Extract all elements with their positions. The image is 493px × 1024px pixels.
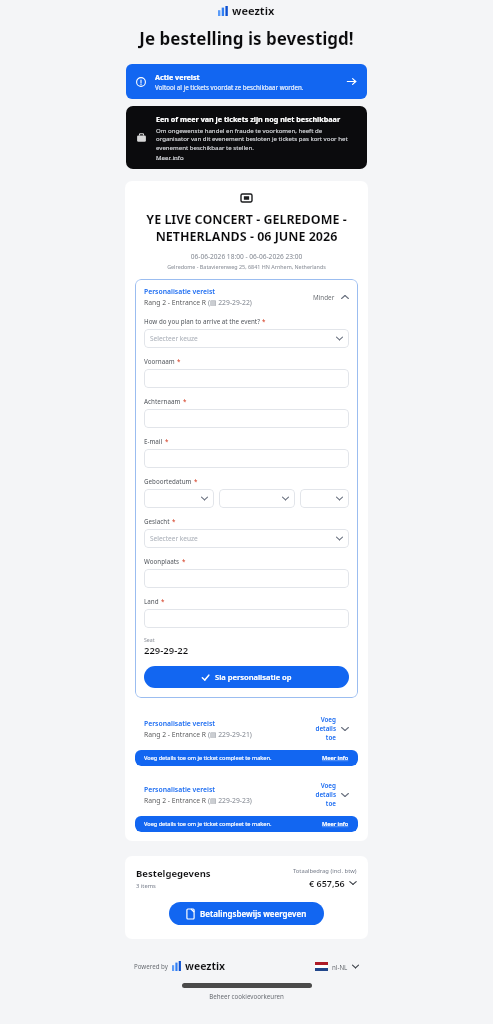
staticText: * [183,397,187,405]
staticText: 06-06-2026 18:00 - 06-06-2026 23:00 [135,252,358,261]
button[interactable]: Personalisatie vereist [135,707,358,750]
staticText: Gelredome - Batavierenweg 25, 6841 HN Ar… [135,263,358,270]
button[interactable]: Betalingsbewijs weergeven [169,902,324,925]
staticText: Meer info [322,820,349,828]
staticText: € 657,56 [309,877,345,889]
staticText: * [182,557,186,565]
staticText: toe [325,799,336,808]
staticText: * [172,517,176,525]
other: Ga verder [346,76,357,87]
button[interactable] [219,489,295,508]
staticText: Personalisatie vereist [144,785,216,794]
staticText: Land [144,597,159,605]
staticText: Rang 2 - Entrance R [144,730,208,739]
button[interactable]: Meer info [156,153,184,161]
button[interactable]: Voeg details toe om je ticket compleet t… [135,816,358,832]
staticText: Sla personalisatie op [215,672,292,682]
staticText: Betalingsbewijs weergeven [200,908,307,919]
staticText: Actie vereist [155,72,200,82]
staticText: toe [325,733,336,742]
staticText: Een of meer van je tickets zijn nog niet… [156,114,341,124]
staticText: Powered by [134,962,168,970]
button[interactable] [144,489,214,508]
staticText: Personalisatie vereist [144,719,216,728]
button[interactable] [144,449,349,468]
button[interactable]: Actie vereist [126,64,367,99]
staticText: 229-29-22 [144,644,189,657]
staticText: Personalisatie vereist [144,287,216,296]
staticText: Voeg details [302,781,336,799]
staticText: E-mail [144,437,163,445]
staticText: Selecteer keuze [150,334,198,343]
staticText: * [165,437,169,445]
staticText: Meer info [322,754,349,762]
staticText: (▤ 229-29-23) [208,796,252,805]
staticText: weeztix [185,959,226,973]
staticText: Minder [313,293,335,302]
staticText: Achternaam [144,397,181,405]
button[interactable]: Selecteer keuze [144,329,349,348]
staticText: Rang 2 - Entrance R [144,796,208,805]
staticText: Woonplaats [144,557,180,565]
staticText: (▤ 229-29-21) [208,730,252,739]
staticText: * [177,357,181,365]
button[interactable] [144,569,349,588]
staticText: YE LIVE CONCERT - GELREDOME - NETHERLAND… [135,211,358,245]
button[interactable] [144,409,349,428]
button[interactable] [300,489,349,508]
staticText: * [262,317,266,325]
staticText: Geslacht [144,517,170,525]
staticText: Seat [144,636,155,643]
button[interactable]: Selecteer keuze [144,529,349,548]
button[interactable]: € 657,56 [309,877,357,889]
button[interactable]: Personalisatie vereist [135,773,358,816]
staticText: * [161,597,165,605]
staticText: Voeg details toe om je ticket compleet t… [144,820,322,828]
button[interactable]: Personalisatie vereist [135,279,358,315]
button[interactable]: nl-NL [315,962,359,971]
staticText: Voornaam [144,357,175,365]
staticText: * [194,477,198,485]
button[interactable] [144,609,349,628]
staticText: Totaalbedrag (incl. btw) [293,867,357,875]
staticText: Om ongewenste handel en fraude te voorko… [156,126,357,152]
staticText: Voeg details [302,715,336,733]
staticText: Voeg details toe om je ticket compleet t… [144,754,322,762]
staticText: (▤ 229-29-22) [208,298,252,307]
button[interactable]: Voeg details toe om je ticket compleet t… [135,750,358,766]
staticText: Je bestelling is bevestigd! [0,27,493,50]
staticText: How do you plan to arrive at the event? [144,317,260,325]
button[interactable]: Beheer cookievoorkeuren [0,992,493,1000]
staticText: Selecteer keuze [150,534,198,543]
button[interactable]: Sla personalisatie op [144,666,349,688]
button[interactable] [144,369,349,388]
staticText: Rang 2 - Entrance R [144,298,208,307]
staticText: Bestelgegevens [136,867,211,880]
staticText: Voltooi al je tickets voordat ze beschik… [155,83,304,91]
staticText: Geboortedatum [144,477,192,485]
staticText: 3 items [136,882,156,890]
staticText: weeztix [232,3,275,18]
staticText: nl-NL [332,963,348,971]
